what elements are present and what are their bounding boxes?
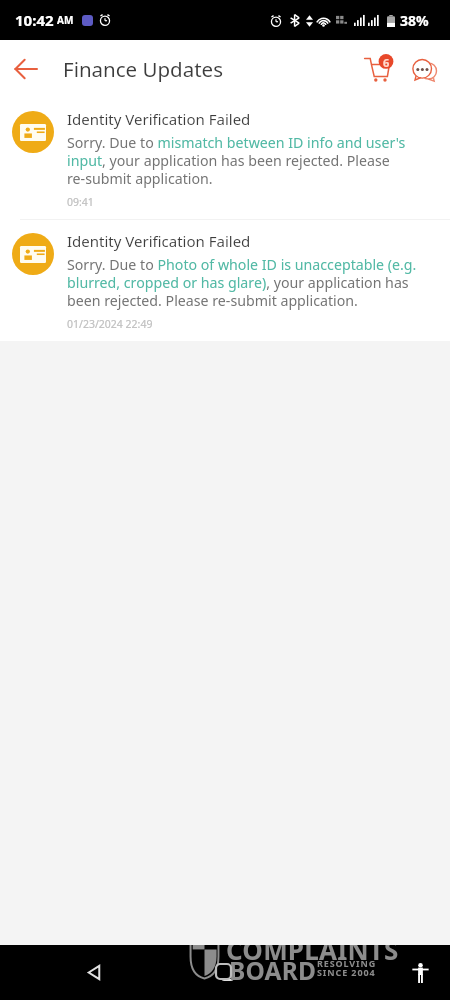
button[interactable]: Cart [356,47,400,91]
staticText: RESOLVING [317,957,377,969]
button[interactable]: Back [4,47,48,91]
staticText: 38% [400,11,429,30]
staticText: BOARD [229,954,317,987]
staticText: Sorry. Due to mismatch between ID info a… [67,133,420,188]
staticText: 01/23/2024 22:49 [67,317,153,331]
button[interactable]: Accessibility [400,953,440,993]
button[interactable]: Home [203,950,247,994]
staticText: 6 [383,55,390,70]
button[interactable]: Identity Verification Failed [0,98,450,219]
button[interactable]: Messages [402,49,442,89]
staticText: AM [57,13,74,27]
staticText: Finance Updates [63,55,223,83]
staticText: Identity Verification Failed [67,109,251,129]
button[interactable]: Identity Verification Failed [0,220,450,341]
staticText: Sorry. Due to Photo of whole ID is unacc… [67,255,420,310]
staticText: COMPLAINTS [226,945,399,967]
button[interactable]: Recent apps [334,950,378,994]
staticText: 10:42 [15,10,54,30]
button[interactable]: Back [72,950,116,994]
staticText: SINCE 2004 [317,966,376,978]
staticText: Identity Verification Failed [67,231,251,251]
staticText: 09:41 [67,195,94,209]
